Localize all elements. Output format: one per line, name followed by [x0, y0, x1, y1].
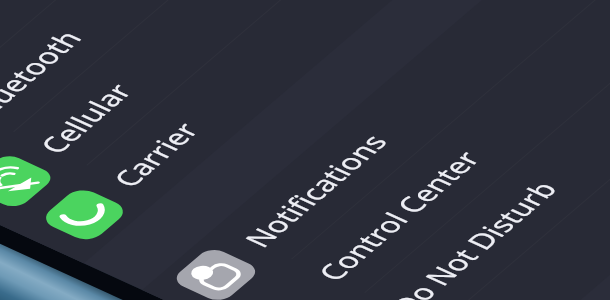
button[interactable]: Settings — [0, 0, 610, 300]
